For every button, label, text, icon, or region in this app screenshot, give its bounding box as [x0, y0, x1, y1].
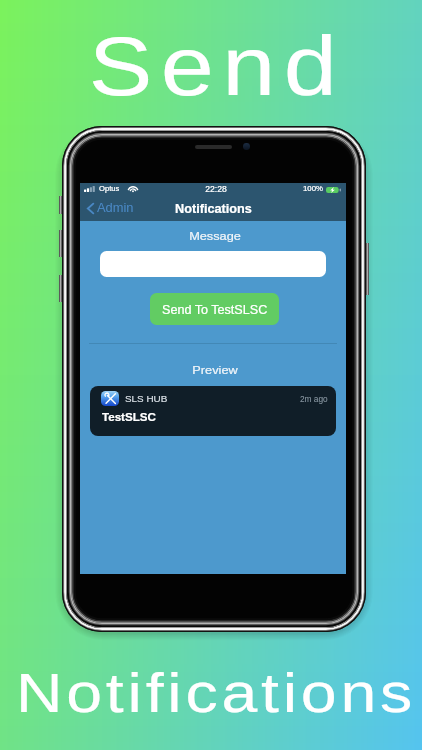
- staticText: Preview: [69, 363, 361, 376]
- staticText: Admin: [97, 200, 134, 214]
- staticText: 100%: [303, 184, 323, 193]
- button[interactable]: Send To TestSLSC: [150, 293, 279, 325]
- staticText: Message: [69, 229, 361, 242]
- staticText: 22:28: [83, 184, 349, 194]
- staticText: Send To TestSLSC: [162, 303, 268, 317]
- staticText: 2m ago: [300, 394, 328, 403]
- staticText: TestSLSC: [102, 410, 156, 423]
- other: Wi-Fi: [128, 185, 138, 192]
- button[interactable]: SLS HUB: [90, 386, 336, 436]
- staticText: Send: [0, 20, 422, 113]
- staticText: Optus: [99, 184, 120, 192]
- button[interactable]: Admin: [83, 199, 134, 213]
- staticText: Notifications: [0, 661, 422, 724]
- staticText: Notifications: [175, 202, 252, 216]
- staticText: SLS HUB: [125, 393, 168, 404]
- other: Battery charging: [326, 187, 342, 193]
- other: Cellular signal: [84, 186, 95, 192]
- button[interactable]: [100, 251, 326, 277]
